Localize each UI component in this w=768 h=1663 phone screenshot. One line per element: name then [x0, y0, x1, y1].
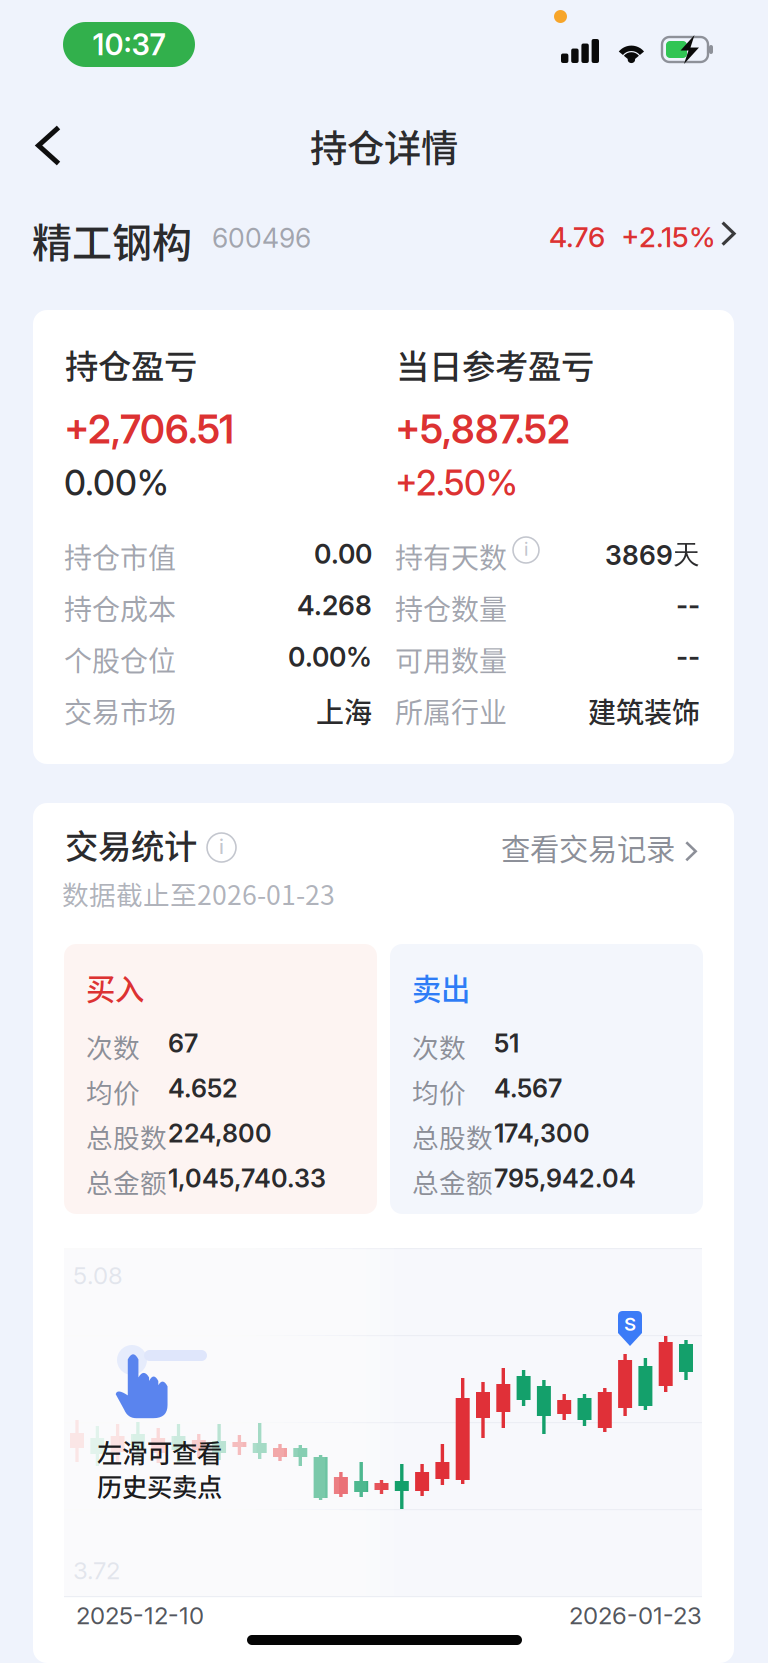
button[interactable]: 精工钢构: [0, 192, 768, 270]
staticText: 个股仓位: [64, 639, 176, 679]
staticText: 3869天: [605, 538, 700, 572]
staticText: 3.72: [73, 1556, 120, 1585]
staticText: +2,706.51: [64, 406, 234, 453]
staticText: 51: [494, 1028, 519, 1059]
staticText: 交易市场: [64, 690, 176, 731]
staticText: 均价: [86, 1072, 140, 1111]
staticText: 总股数: [86, 1117, 167, 1156]
staticText: 10:37: [92, 27, 165, 62]
staticText: 0.00%: [64, 462, 169, 504]
staticText: 左滑可查看: [97, 1433, 222, 1470]
staticText: 总金额: [86, 1162, 167, 1201]
staticText: 当日参考盈亏: [396, 340, 594, 388]
staticText: 4.567: [494, 1073, 562, 1104]
staticText: 4.76: [549, 220, 605, 254]
staticText: 交易统计: [65, 820, 197, 868]
staticText: 5.08: [73, 1261, 123, 1290]
staticText: 持仓市值: [64, 536, 176, 576]
staticText: +2.15%: [621, 220, 716, 254]
staticText: +2.50%: [395, 462, 518, 504]
staticText: 可用数量: [395, 639, 507, 679]
staticText: 持仓数量: [395, 587, 507, 628]
staticText: 0.00: [314, 538, 372, 570]
button[interactable]: 查看交易记录: [501, 821, 731, 871]
staticText: 所属行业: [395, 690, 507, 731]
staticText: 4.652: [168, 1073, 238, 1104]
staticText: 持仓成本: [64, 587, 176, 628]
staticText: 次数: [412, 1027, 466, 1066]
staticText: 精工钢构: [32, 211, 192, 269]
staticText: S: [624, 1313, 636, 1335]
staticText: i: [219, 835, 224, 859]
staticText: --: [676, 589, 700, 622]
staticText: 4.268: [297, 589, 372, 622]
staticText: 795,942.04: [494, 1163, 636, 1194]
staticText: 174,300: [494, 1118, 590, 1149]
staticText: 持有天数: [395, 536, 507, 576]
staticText: 持仓详情: [310, 119, 458, 173]
staticText: 数据截止至2026-01-23: [62, 874, 335, 913]
staticText: 224,800: [168, 1118, 272, 1149]
staticText: i: [524, 539, 528, 560]
staticText: 均价: [412, 1072, 466, 1111]
staticText: 次数: [86, 1027, 140, 1066]
staticText: 总股数: [412, 1117, 493, 1156]
staticText: 历史买卖点: [97, 1467, 222, 1504]
staticText: 建筑装饰: [588, 690, 700, 731]
staticText: 1,045,740.33: [168, 1163, 326, 1194]
staticText: 600496: [212, 222, 311, 254]
staticText: --: [676, 641, 700, 673]
staticText: 上海: [316, 690, 372, 731]
staticText: 2025-12-10: [76, 1601, 204, 1630]
staticText: 2026-01-23: [569, 1601, 702, 1630]
staticText: 67: [168, 1028, 198, 1059]
button[interactable]: Back: [0, 111, 91, 180]
staticText: 总金额: [412, 1162, 493, 1201]
staticText: 买入: [86, 966, 144, 1008]
staticText: 查看交易记录: [501, 826, 675, 868]
staticText: +5,887.52: [395, 406, 570, 453]
staticText: 持仓盈亏: [65, 340, 197, 388]
staticText: 卖出: [412, 966, 470, 1008]
staticText: 0.00%: [288, 641, 372, 673]
